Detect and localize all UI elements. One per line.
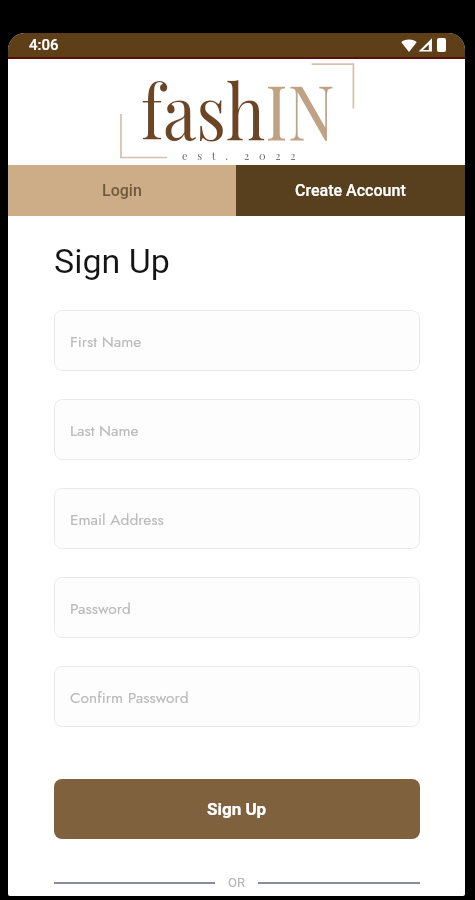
other: Battery bbox=[437, 38, 446, 52]
staticText: First Name bbox=[70, 330, 142, 352]
button[interactable]: Create Account bbox=[236, 165, 465, 216]
staticText: OR bbox=[228, 875, 245, 890]
staticText: Login bbox=[102, 181, 142, 200]
staticText: IN bbox=[265, 58, 335, 159]
staticText: 4:06 bbox=[29, 36, 59, 54]
staticText: Confirm Password bbox=[70, 686, 189, 708]
other: Wi-Fi bbox=[401, 38, 417, 52]
button[interactable]: Sign Up bbox=[54, 779, 420, 839]
staticText: Sign Up bbox=[207, 799, 267, 819]
button[interactable]: Last Name bbox=[54, 399, 420, 460]
button[interactable]: Confirm Password bbox=[54, 666, 420, 727]
staticText: Create Account bbox=[295, 181, 406, 200]
button[interactable]: First Name bbox=[54, 310, 420, 371]
staticText: Sign Up bbox=[54, 241, 170, 281]
other: Mobile signal bbox=[418, 38, 433, 52]
button[interactable]: Email Address bbox=[54, 488, 420, 549]
staticText: e s t . 2 0 2 2 bbox=[182, 148, 300, 163]
staticText: fash bbox=[141, 58, 265, 159]
button[interactable]: Password bbox=[54, 577, 420, 638]
staticText: Last Name bbox=[70, 419, 139, 441]
button[interactable]: Login bbox=[8, 165, 236, 216]
staticText: Password bbox=[70, 597, 131, 619]
staticText: Email Address bbox=[70, 508, 164, 530]
